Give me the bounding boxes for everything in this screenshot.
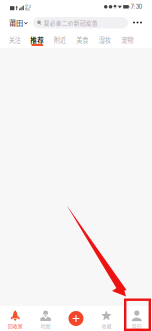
button[interactable]: 发布: [61, 306, 91, 331]
button[interactable]: 地图: [30, 306, 61, 331]
staticText: 湿妆: [99, 35, 111, 44]
button[interactable]: 推荐: [26, 32, 48, 48]
button[interactable]: 回收家: [0, 306, 30, 331]
button[interactable]: 我的: [122, 306, 152, 331]
button[interactable]: 复必泰二价新冠疫苗: [33, 17, 128, 28]
staticText: 收藏: [101, 322, 111, 329]
staticText: 关注: [9, 35, 21, 44]
staticText: K/s: [25, 7, 30, 11]
button[interactable]: 收藏: [91, 306, 122, 331]
staticText: 美食: [76, 35, 88, 44]
button[interactable]: 宠物: [116, 32, 138, 48]
staticText: 莆田: [9, 17, 23, 28]
staticText: 附近: [54, 35, 66, 44]
staticText: 我的: [132, 322, 142, 329]
button[interactable]: 莆田: [0, 13, 33, 32]
staticText: 17.2: [25, 4, 31, 9]
staticText: 地图: [41, 322, 51, 329]
button[interactable]: 美食: [71, 32, 93, 48]
staticText: 7:30: [131, 3, 143, 10]
button[interactable]: 湿妆: [94, 32, 116, 48]
staticText: 回收家: [8, 322, 23, 329]
button[interactable]: 更多: [128, 13, 146, 32]
staticText: 宠物: [121, 35, 133, 44]
staticText: 复必泰二价新冠疫苗: [44, 19, 98, 27]
button[interactable]: 关注: [4, 32, 26, 48]
button[interactable]: 附近: [49, 32, 71, 48]
staticText: 推荐: [30, 35, 44, 45]
